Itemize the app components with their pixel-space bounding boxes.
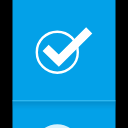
button[interactable]: Task complete — [0, 0, 128, 128]
